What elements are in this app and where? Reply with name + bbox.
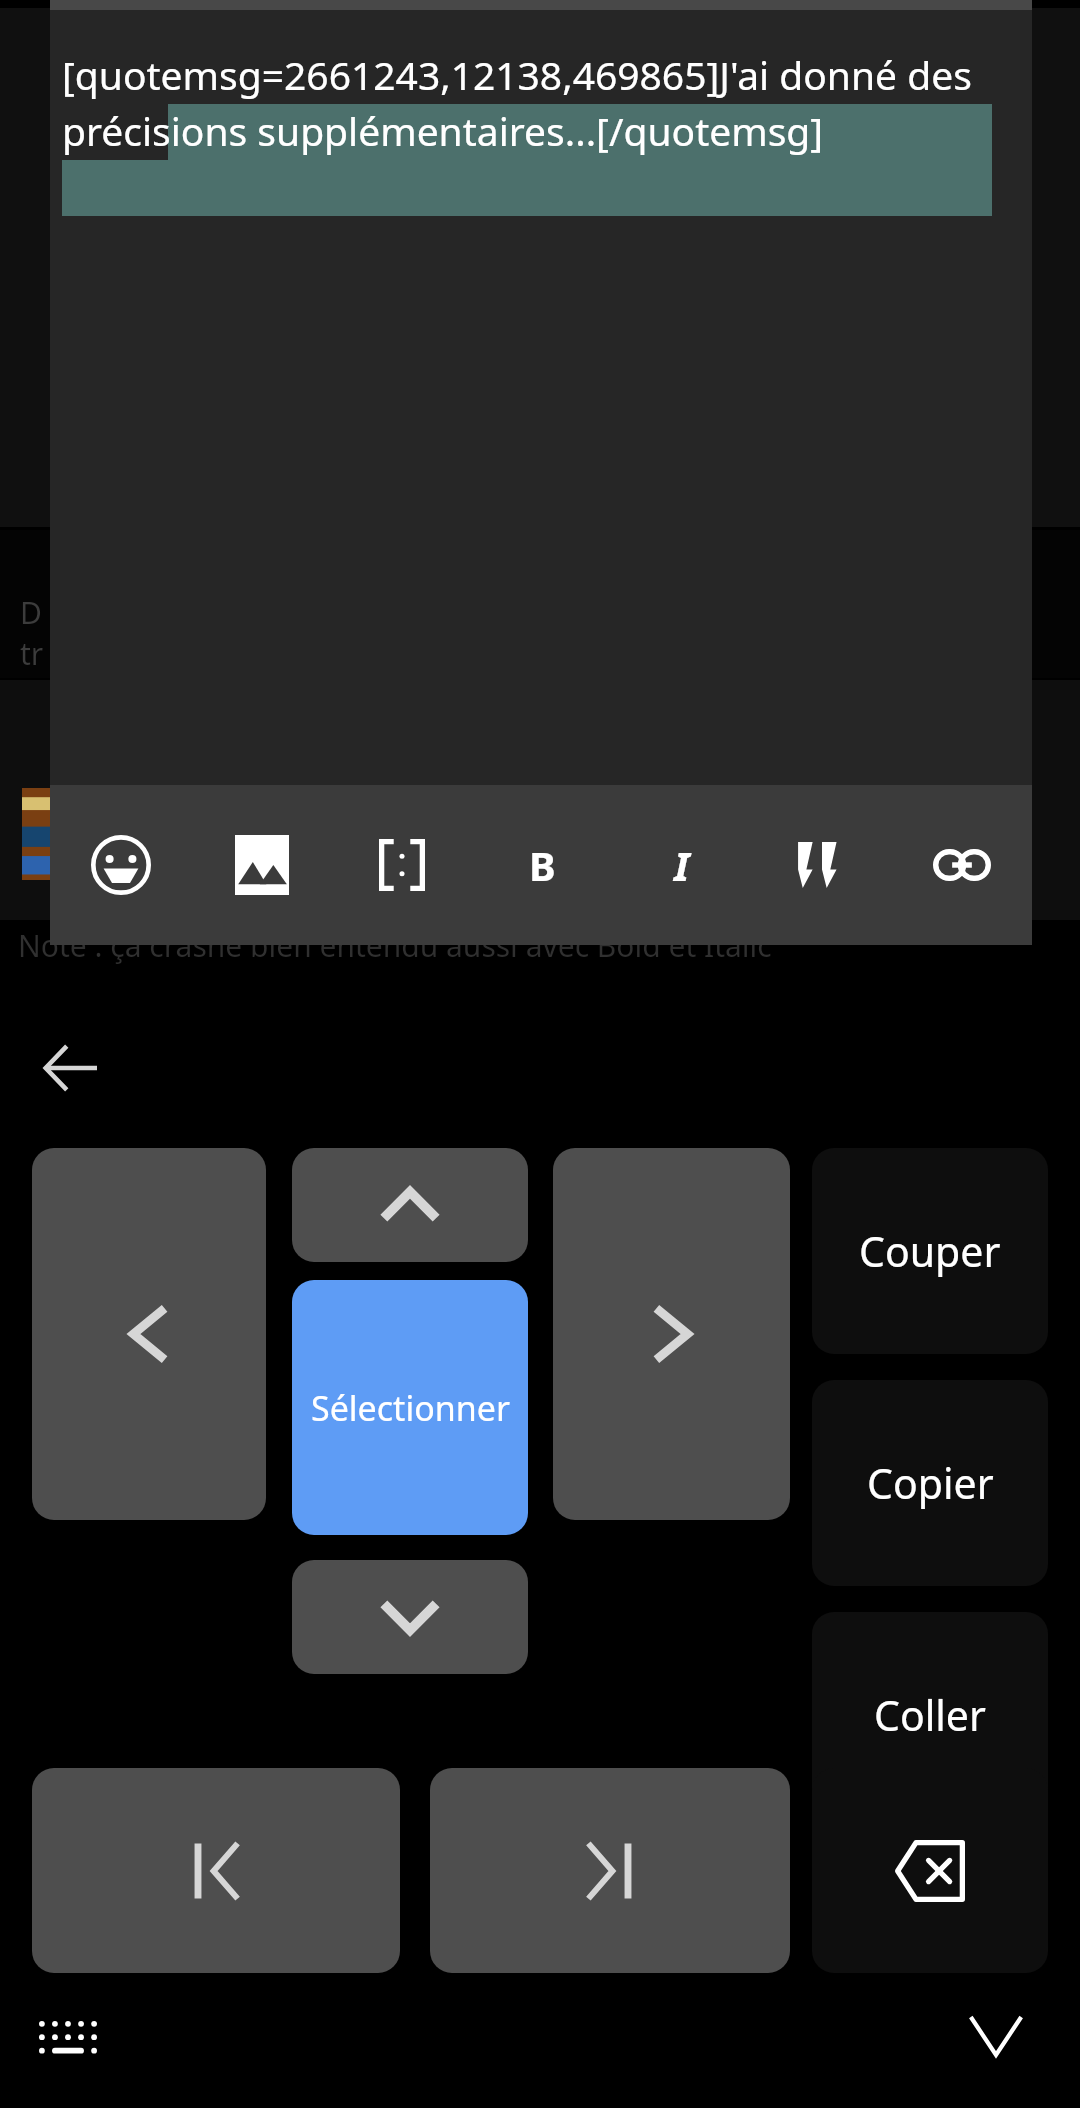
button[interactable]: Move to end (430, 1768, 790, 1973)
staticText: Sélectionner (311, 1385, 510, 1431)
staticText: Copier (867, 1455, 994, 1511)
button[interactable]: Insert image (191, 785, 332, 945)
button[interactable]: Move cursor up (292, 1148, 528, 1262)
staticText: Coller (874, 1687, 986, 1743)
staticText: [quotemsg=2661243,12138,469865]J'ai donn… (62, 48, 994, 157)
button[interactable]: Italic (612, 785, 752, 945)
button[interactable]: Quote (752, 785, 892, 945)
button[interactable]: Back (20, 1018, 120, 1118)
button[interactable]: Move to start (32, 1768, 400, 1973)
button[interactable]: Coller (812, 1612, 1048, 1818)
button[interactable]: Bold (472, 785, 612, 945)
button[interactable]: Couper (812, 1148, 1048, 1354)
button[interactable]: Insert code (332, 785, 472, 945)
staticText: tr (20, 633, 44, 674)
button[interactable]: Move cursor left (32, 1148, 266, 1520)
staticText: I (674, 838, 690, 892)
button[interactable]: Insert link (892, 785, 1032, 945)
staticText: B (529, 838, 556, 892)
button[interactable]: Copier (812, 1380, 1048, 1586)
staticText: D (20, 592, 42, 633)
staticText: Note : ça crashe bien entendu aussi avec… (18, 925, 772, 966)
button[interactable]: Emoji (50, 785, 191, 945)
staticText: Couper (859, 1223, 1001, 1279)
button[interactable]: Move cursor down (292, 1560, 528, 1674)
button[interactable]: Backspace (812, 1768, 1048, 1973)
button[interactable]: Move cursor right (553, 1148, 790, 1520)
button[interactable]: Switch keyboard (24, 1992, 112, 2080)
button[interactable]: Sélectionner (292, 1280, 528, 1535)
button[interactable]: Hide keyboard (946, 1996, 1046, 2076)
